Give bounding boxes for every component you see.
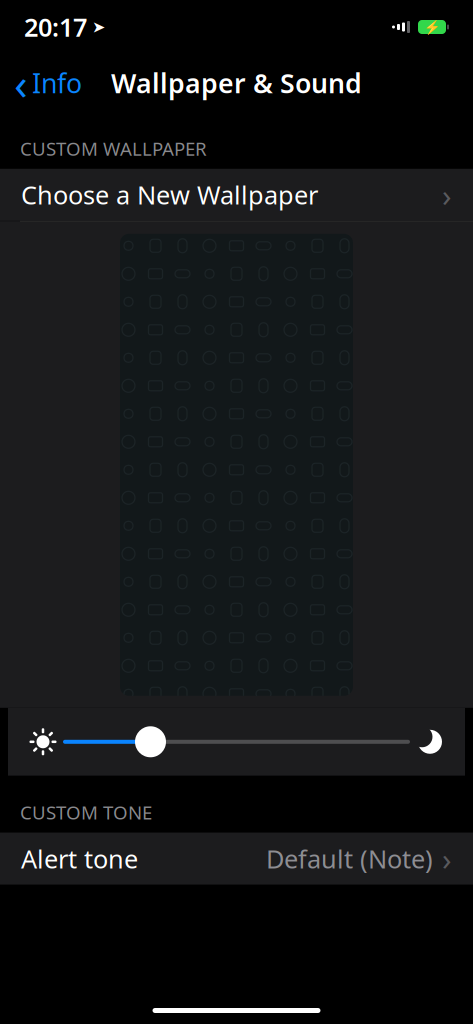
staticText: ✆: [325, 69, 342, 92]
staticText: CUSTOM TONE: [20, 800, 152, 825]
button[interactable]: ‹: [0, 61, 96, 105]
staticText: Default (Note): [266, 842, 433, 875]
staticText: 20:17: [24, 10, 87, 44]
staticText: WBI: [177, 70, 209, 91]
staticText: ›: [442, 838, 452, 879]
staticText: ➤: [92, 18, 105, 36]
button[interactable]: Increase brightness: [410, 722, 450, 762]
button[interactable]: Decrease brightness: [23, 722, 63, 762]
staticText: +: [124, 837, 138, 871]
staticText: ▣: [296, 70, 314, 91]
staticText: 🎙: [331, 845, 351, 863]
staticText: ⚡: [423, 19, 440, 35]
button[interactable]: Alert tone: [0, 833, 473, 885]
staticText: ▣: [303, 845, 318, 863]
staticText: ●: [153, 73, 165, 88]
button[interactable]: Choose a New Wallpaper: [0, 169, 473, 221]
staticText: Choose a New Wallpaper: [21, 178, 318, 212]
staticText: Alert tone: [21, 842, 138, 875]
staticText: Wallpaper & Sound: [111, 65, 362, 101]
staticText: Info: [32, 65, 82, 101]
staticText: ‹: [14, 54, 28, 112]
staticText: ◐: [272, 846, 285, 863]
staticText: ‹: [130, 61, 139, 100]
staticText: CUSTOM WALLPAPER: [20, 136, 207, 161]
staticText: ›: [442, 174, 452, 215]
